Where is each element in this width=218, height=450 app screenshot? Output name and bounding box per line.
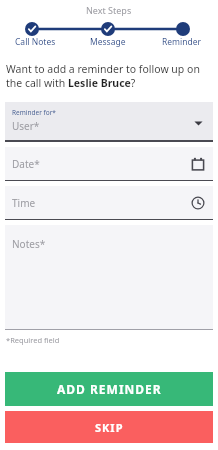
staticText: Reminder for* (12, 108, 56, 117)
button[interactable]: Time (5, 186, 213, 220)
staticText: Time (12, 196, 36, 210)
button[interactable]: ADD REMINDER (5, 372, 213, 406)
staticText: Reminder (162, 36, 202, 48)
staticText: Next Steps (86, 4, 132, 16)
button[interactable]: Reminder for* (5, 102, 213, 142)
staticText: Notes* (12, 237, 46, 251)
staticText: Want to add a reminder to follow up on t… (6, 62, 212, 90)
other: Open dropdown (194, 118, 203, 127)
button[interactable]: Date* (5, 147, 213, 181)
staticText: Message (90, 36, 126, 48)
staticText: User* (12, 119, 40, 133)
staticText: ADD REMINDER (57, 381, 162, 397)
other: Pick date (191, 157, 205, 171)
button[interactable]: Notes* (5, 225, 213, 330)
staticText: Date* (12, 157, 40, 171)
staticText: Call Notes (15, 36, 56, 48)
staticText: *Required field (6, 335, 60, 345)
other: Pick time (191, 196, 205, 210)
button[interactable]: SKIP (5, 411, 213, 443)
staticText: SKIP (95, 420, 124, 435)
